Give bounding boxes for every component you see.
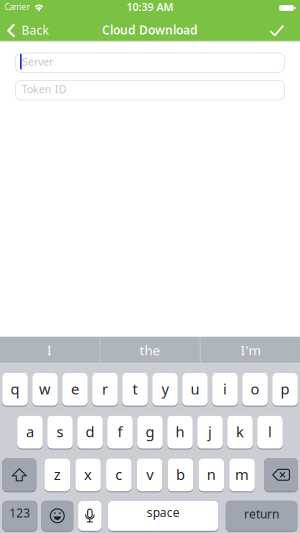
button[interactable]: b [168, 458, 193, 492]
staticText: Cloud Download [102, 22, 198, 38]
button[interactable]: f [107, 415, 133, 449]
staticText: I'm [240, 341, 260, 359]
button[interactable]: I [0, 337, 99, 363]
staticText: b [176, 465, 185, 484]
staticText: c [115, 465, 122, 484]
staticText: f [117, 422, 122, 441]
button[interactable]: e [62, 373, 88, 407]
button[interactable]: p [272, 373, 298, 407]
button[interactable] [78, 501, 102, 532]
button[interactable]: Server [15, 52, 285, 73]
staticText: d [85, 422, 94, 441]
button[interactable]: s [47, 415, 73, 449]
button[interactable]: g [137, 415, 163, 449]
staticText: r [102, 379, 108, 398]
button[interactable]: n [198, 458, 224, 492]
staticText: return [244, 506, 279, 522]
staticText: g [145, 422, 154, 441]
button[interactable]: a [17, 415, 43, 449]
staticText: k [236, 422, 244, 441]
staticText: e [71, 379, 79, 398]
staticText: n [207, 465, 216, 484]
staticText: space [147, 504, 180, 520]
button[interactable]: space [108, 501, 218, 532]
button[interactable]: return [226, 501, 297, 532]
button[interactable]: o [242, 373, 268, 407]
button[interactable]: 123 [2, 501, 37, 532]
staticText: v [146, 465, 153, 484]
staticText: h [175, 422, 184, 441]
staticText: j [208, 422, 212, 441]
staticText: Back [21, 22, 48, 38]
button[interactable] [270, 20, 300, 36]
button[interactable]: Token ID [15, 80, 285, 100]
button[interactable]: i [212, 373, 238, 407]
button[interactable]: h [167, 415, 193, 449]
button[interactable]: the [100, 337, 200, 363]
button[interactable]: v [137, 458, 162, 492]
staticText: x [84, 465, 92, 484]
button[interactable]: I'm [201, 337, 300, 363]
button[interactable]: r [92, 373, 118, 407]
staticText: z [54, 465, 61, 484]
staticText: m [235, 465, 249, 484]
staticText: l [268, 422, 272, 441]
button[interactable]: u [182, 373, 208, 407]
staticText: Server [22, 55, 53, 69]
staticText: Carrier [4, 2, 29, 12]
button[interactable]: w [32, 373, 58, 407]
staticText: q [10, 379, 19, 398]
button[interactable]: z [44, 458, 70, 492]
button[interactable]: q [2, 373, 28, 407]
button[interactable]: d [77, 415, 103, 449]
staticText: y [161, 379, 168, 398]
staticText: w [39, 379, 51, 398]
button[interactable] [264, 458, 298, 492]
button[interactable] [41, 501, 73, 532]
staticText: s [56, 422, 63, 441]
staticText: the [139, 341, 160, 359]
button[interactable]: x [75, 458, 101, 492]
staticText: Token ID [22, 82, 67, 96]
staticText: 123 [9, 505, 30, 521]
button[interactable]: t [122, 373, 148, 407]
staticText: p [280, 379, 289, 398]
staticText: 10:39 AM [126, 0, 173, 14]
staticText: o [250, 379, 259, 398]
button[interactable]: j [197, 415, 223, 449]
button[interactable]: Back [0, 18, 48, 39]
button[interactable]: k [227, 415, 253, 449]
staticText: I [47, 341, 52, 359]
staticText: t [132, 379, 137, 398]
staticText: u [190, 379, 199, 398]
staticText: a [26, 422, 34, 441]
button[interactable]: l [257, 415, 283, 449]
staticText: i [223, 379, 227, 398]
button[interactable]: y [152, 373, 178, 407]
button[interactable]: c [106, 458, 132, 492]
button[interactable]: m [229, 458, 255, 492]
button[interactable] [2, 458, 36, 492]
